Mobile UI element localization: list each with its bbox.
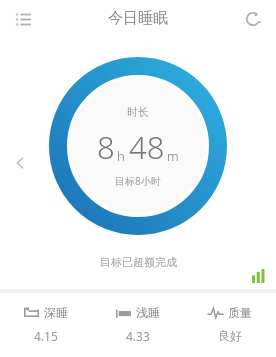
staticText: 质量 — [228, 305, 252, 320]
staticText: 浅睡 — [136, 305, 160, 320]
staticText: 4.33 — [126, 328, 150, 344]
button[interactable]: Signal — [248, 265, 270, 287]
staticText: 良好 — [218, 328, 242, 343]
button[interactable]: Menu — [8, 4, 38, 34]
staticText: h — [117, 147, 125, 165]
staticText: 目标8小时 — [115, 174, 161, 188]
staticText: 8 — [97, 126, 115, 168]
staticText: 今日睡眠 — [108, 9, 168, 28]
staticText: 目标已超额完成 — [100, 255, 177, 269]
button[interactable]: 质量 — [184, 293, 276, 357]
staticText: 深睡 — [44, 305, 68, 320]
staticText: 时长 — [127, 105, 149, 119]
button[interactable]: 浅睡 — [92, 293, 184, 357]
button[interactable]: Previous day — [6, 149, 34, 177]
staticText: 48 — [129, 126, 165, 168]
button[interactable]: 深睡 — [0, 293, 92, 357]
button[interactable]: Refresh — [238, 4, 268, 34]
staticText: 4.15 — [34, 328, 58, 344]
staticText: m — [167, 147, 179, 165]
